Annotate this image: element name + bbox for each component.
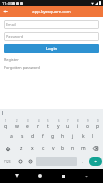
staticText: x — [31, 145, 34, 152]
staticText: k — [82, 133, 85, 140]
staticText: 8 — [77, 119, 79, 123]
button[interactable]: 5 — [43, 118, 53, 130]
button[interactable]: c — [38, 142, 48, 155]
staticText: p — [96, 123, 100, 130]
staticText: Register — [4, 57, 19, 62]
button[interactable]: a — [6, 130, 17, 142]
button[interactable]: z — [16, 142, 27, 155]
staticText: 0 — [97, 119, 99, 123]
staticText: f — [42, 133, 44, 140]
staticText: Email — [6, 22, 16, 27]
button[interactable]: Recents — [57, 170, 69, 182]
staticText: b — [61, 145, 65, 152]
button[interactable]: Login — [4, 44, 99, 53]
button[interactable]: k — [78, 130, 88, 142]
staticText: o — [86, 123, 90, 130]
staticText: 6 — [58, 119, 60, 123]
button[interactable]: l — [88, 130, 98, 142]
staticText: i — [77, 123, 79, 130]
button[interactable]: Language — [15, 155, 25, 168]
button[interactable]: j — [68, 130, 78, 142]
staticText: e — [26, 123, 29, 130]
button[interactable]: Email — [4, 20, 99, 29]
button[interactable]: Home — [34, 170, 46, 182]
button[interactable]: v — [48, 142, 58, 155]
button[interactable]: n — [68, 142, 78, 155]
button[interactable]: h — [58, 130, 68, 142]
staticText: g — [51, 133, 55, 140]
staticText: a — [10, 133, 13, 140]
staticText: m — [81, 145, 86, 152]
staticText: 2 — [16, 119, 18, 123]
staticText: t — [47, 123, 49, 130]
staticText: . — [82, 159, 84, 164]
button[interactable]: 7 — [63, 118, 73, 130]
staticText: h — [61, 133, 65, 140]
staticText: ?123 — [4, 160, 11, 164]
button[interactable]: 6 — [53, 118, 63, 130]
staticText: u — [66, 123, 70, 130]
button[interactable]: 8 — [73, 118, 83, 130]
button[interactable]: Forgotten password — [4, 65, 40, 70]
staticText: r — [37, 123, 40, 130]
staticText: Forgotten password — [4, 65, 40, 70]
staticText: d — [31, 133, 35, 140]
staticText: c — [42, 145, 45, 152]
staticText: 11:00 — [2, 1, 13, 6]
button[interactable]: 1 — [0, 118, 11, 130]
button[interactable]: f — [38, 130, 48, 142]
button[interactable]: m — [78, 142, 88, 155]
button[interactable]: Password — [4, 32, 99, 41]
button[interactable]: 2 — [11, 118, 22, 130]
staticText: n — [71, 145, 75, 152]
button[interactable]: 9 — [83, 118, 93, 130]
staticText: 7 — [67, 119, 69, 123]
button[interactable]: Back — [11, 170, 23, 182]
staticText: v — [52, 145, 55, 152]
button[interactable]: 0 — [93, 118, 103, 130]
staticText: app.byzsquare.com — [32, 9, 71, 15]
button[interactable]: d — [28, 130, 38, 142]
button[interactable]: s — [17, 130, 28, 142]
button[interactable]: g — [48, 130, 58, 142]
staticText: 9 — [87, 119, 89, 123]
staticText: z — [20, 145, 23, 152]
button[interactable]: 4 — [33, 118, 43, 130]
staticText: l — [92, 133, 94, 140]
staticText: Password — [6, 34, 24, 39]
staticText: 4 — [38, 119, 40, 123]
staticText: j — [72, 133, 74, 140]
staticText: 3 — [27, 119, 29, 123]
staticText: q — [4, 123, 8, 130]
button[interactable]: b — [58, 142, 68, 155]
button[interactable]: Enter — [89, 157, 102, 166]
button[interactable]: x — [27, 142, 38, 155]
staticText: 1 — [5, 119, 7, 123]
button[interactable]: 3 — [22, 118, 33, 130]
staticText: w — [15, 123, 19, 130]
button[interactable]: Shift — [0, 142, 16, 155]
button[interactable]: ?123 — [0, 155, 15, 168]
staticText: Login — [46, 46, 58, 52]
button[interactable]: Register — [4, 57, 19, 62]
staticText: y — [57, 123, 60, 130]
button[interactable]: Backspace — [88, 142, 103, 155]
staticText: 5 — [47, 119, 49, 123]
button[interactable]: Hide keyboard — [80, 170, 92, 182]
button[interactable]: Emoji — [25, 155, 35, 168]
button[interactable]: Back — [1, 7, 10, 16]
staticText: s — [21, 133, 24, 140]
